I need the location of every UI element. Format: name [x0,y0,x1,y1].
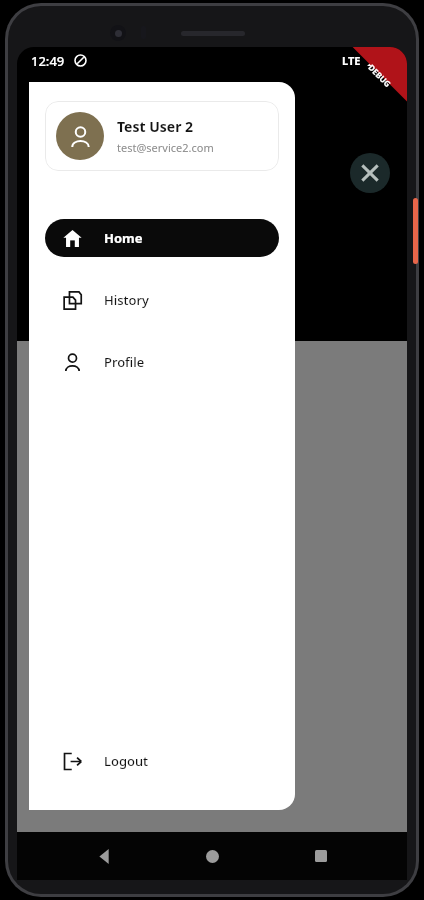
staticText: Profile [104,353,145,371]
button[interactable]: Home [45,219,279,257]
staticText: Home [104,229,143,247]
staticText: 12:49 [31,52,65,70]
staticText: test@service2.com [117,140,214,155]
staticText: ONGOING [265,360,330,378]
staticText: Test User 2 [117,117,194,136]
button[interactable]: Back [82,834,126,878]
button[interactable]: Home [190,834,234,878]
staticText: Logout [104,752,149,770]
button[interactable]: Recent apps [299,834,343,878]
button[interactable]: History [45,281,279,319]
button[interactable]: Profile [45,343,279,381]
staticText: History [104,291,149,309]
staticText: LTE [342,53,361,68]
button[interactable]: App logo [350,153,390,193]
button[interactable]: Test User 2 [45,101,279,171]
button[interactable]: Logout [45,742,279,780]
staticText: DEBUG [366,62,394,89]
